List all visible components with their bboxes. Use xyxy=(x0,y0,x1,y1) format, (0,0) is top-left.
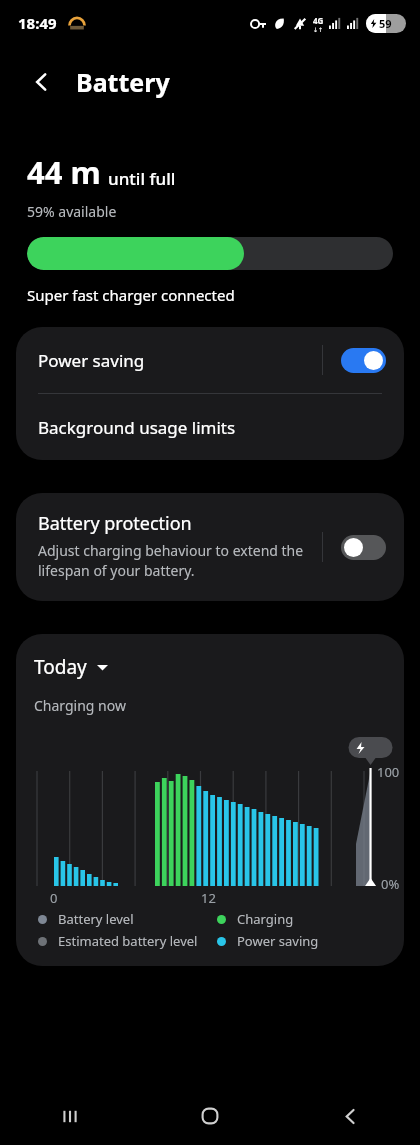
staticText: Charging xyxy=(237,910,294,928)
button[interactable]: Off xyxy=(341,535,386,560)
staticText: Estimated battery level xyxy=(58,932,198,950)
staticText: 44 m xyxy=(27,151,101,193)
staticText: Battery level xyxy=(58,910,134,928)
staticText: Battery protection xyxy=(38,511,192,536)
staticText: ↓↑ xyxy=(313,26,324,33)
staticText: 18:49 xyxy=(18,13,57,33)
button[interactable]: Back xyxy=(22,62,62,102)
staticText: Charging now xyxy=(34,696,126,715)
button[interactable]: Today xyxy=(34,654,108,680)
button[interactable]: On xyxy=(341,348,386,373)
button[interactable]: Back xyxy=(280,1087,420,1145)
staticText: Today xyxy=(34,654,87,680)
staticText: Adjust charging behaviour to extend the … xyxy=(38,541,322,581)
staticText: 59 xyxy=(379,16,392,31)
staticText: until full xyxy=(108,167,176,190)
staticText: Power saving xyxy=(237,932,319,950)
button[interactable]: Background usage limits xyxy=(16,394,404,460)
button[interactable]: Recents xyxy=(0,1087,140,1145)
staticText: 0% xyxy=(381,875,400,893)
staticText: 100 xyxy=(377,763,400,781)
staticText: Super fast charger connected xyxy=(27,285,235,305)
staticText: 4G xyxy=(313,15,324,26)
staticText: 12 xyxy=(201,889,216,904)
staticText: 59% available xyxy=(27,202,117,221)
button[interactable]: Battery protection xyxy=(16,493,404,601)
staticText: Battery xyxy=(76,65,170,99)
staticText: Background usage limits xyxy=(38,416,236,439)
staticText: Power saving xyxy=(38,349,322,372)
staticText: 0 xyxy=(50,889,58,904)
button[interactable]: Home xyxy=(140,1087,280,1145)
button[interactable]: Power saving xyxy=(16,327,404,393)
